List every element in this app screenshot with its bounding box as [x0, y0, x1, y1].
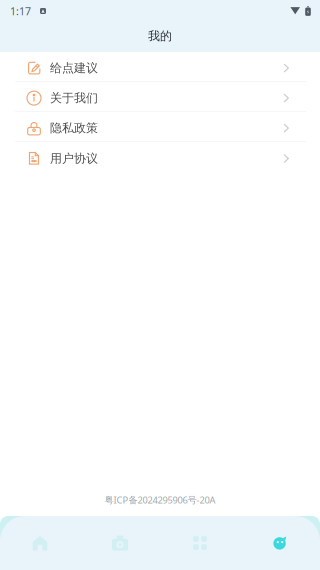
button[interactable]: 首页 [0, 516, 80, 570]
staticText: 1:17 [10, 4, 31, 18]
staticText: 用户协议 [50, 151, 98, 166]
staticText: 给点建议 [50, 61, 98, 75]
button[interactable]: 我的 [240, 516, 320, 570]
staticText: 我的 [148, 29, 172, 43]
staticText: 隐私政策 [50, 121, 98, 135]
button[interactable]: 给点建议 [0, 52, 320, 82]
button[interactable]: 用户协议 [0, 142, 320, 172]
button[interactable]: 隐私政策 [0, 112, 320, 142]
staticText: 关于我们 [50, 91, 98, 105]
button[interactable]: 分类 [160, 516, 240, 570]
button[interactable]: 关于我们 [0, 82, 320, 112]
button[interactable]: 拍照 [80, 516, 160, 570]
staticText: 粤ICP备2024295906号-20A [104, 494, 215, 506]
